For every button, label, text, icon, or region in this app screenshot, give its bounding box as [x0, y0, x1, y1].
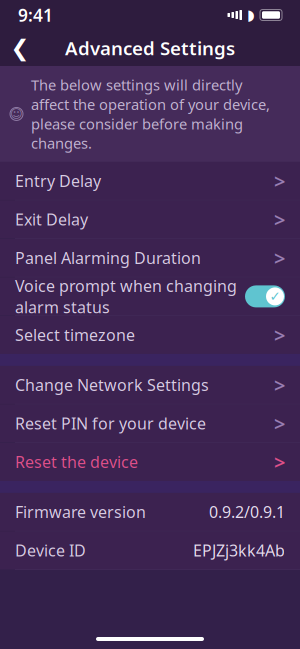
button[interactable]: Change Network Settings — [0, 366, 300, 404]
staticText: > — [274, 245, 285, 271]
button[interactable]: Exit Delay — [0, 200, 300, 238]
staticText: ◗ — [247, 7, 255, 23]
staticText: Advanced Settings — [65, 36, 235, 60]
button[interactable]: Back — [0, 30, 40, 66]
staticText: Device ID — [15, 540, 86, 561]
button[interactable]: Reset the device — [0, 443, 300, 481]
staticText: Entry Delay — [15, 170, 101, 191]
staticText: ✓ — [269, 289, 280, 304]
staticText: Firmware version — [15, 501, 146, 522]
staticText: > — [274, 168, 285, 194]
button[interactable]: Voice prompt when changing alarm status — [0, 277, 300, 315]
staticText: > — [274, 449, 285, 475]
staticText: Voice prompt when changing alarm status — [15, 275, 237, 318]
staticText: Panel Alarming Duration — [15, 247, 201, 268]
staticText: EPJZj3kk4Ab — [193, 540, 285, 561]
staticText: Reset PIN for your device — [15, 413, 206, 434]
staticText: 9:41 — [18, 3, 53, 26]
staticText: 0.9.2/0.9.1 — [209, 501, 285, 522]
staticText: ❮ — [10, 35, 29, 61]
staticText: Exit Delay — [15, 209, 88, 230]
button[interactable]: Entry Delay — [0, 162, 300, 200]
staticText: Change Network Settings — [15, 374, 209, 395]
staticText: ☺ — [10, 107, 23, 121]
button[interactable]: Panel Alarming Duration — [0, 239, 300, 277]
staticText: The below settings will directly affect … — [31, 75, 270, 153]
button[interactable]: Reset PIN for your device — [0, 404, 300, 442]
staticText: > — [274, 206, 285, 233]
staticText: Select timezone — [15, 324, 135, 345]
staticText: > — [274, 372, 285, 398]
staticText: > — [274, 410, 285, 437]
button[interactable]: Select timezone — [0, 316, 300, 354]
staticText: Reset the device — [15, 451, 138, 472]
staticText: > — [274, 322, 285, 348]
